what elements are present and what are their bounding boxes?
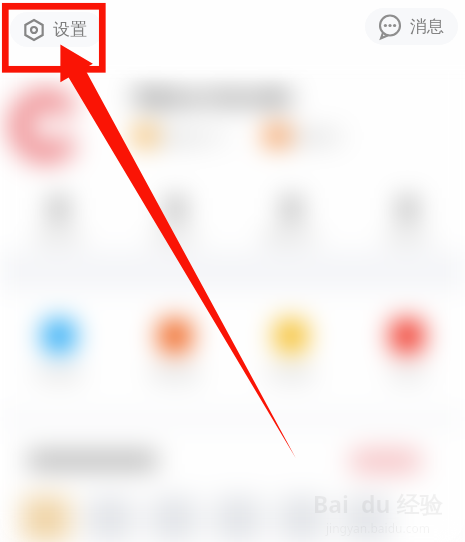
button[interactable] (214, 496, 278, 542)
button[interactable]: 每日福利 (0, 320, 117, 381)
other: Highlight (0, 0, 465, 542)
button[interactable] (150, 496, 214, 542)
button[interactable]: 消息 (365, 8, 458, 45)
staticText: 等级 LV3 (160, 131, 207, 146)
button[interactable]: 排行榜 (349, 320, 465, 381)
button[interactable] (342, 496, 406, 542)
button[interactable] (86, 496, 150, 542)
staticText: 消息 (410, 16, 444, 37)
staticText: 已购作品 (379, 229, 435, 244)
button[interactable]: 设置 (10, 12, 103, 47)
staticText: 限时免费 (147, 366, 203, 381)
button[interactable]: 新书推荐 (233, 320, 349, 381)
staticText: 书友5m1IVEv9BS (131, 84, 293, 111)
button[interactable] (22, 496, 86, 542)
button[interactable]: 阅读记录 (117, 197, 233, 244)
staticText: 会员中心 (293, 131, 337, 145)
staticText: 我的书架 (31, 229, 87, 244)
staticText: 设置 (53, 19, 87, 40)
button[interactable]: 我的书架 (0, 197, 117, 244)
button[interactable]: 限时免费 (117, 320, 233, 381)
button[interactable]: 已购作品 (349, 197, 465, 244)
staticText: 我的福利卡 (258, 229, 325, 244)
staticText: jingyan.baidu.com (326, 520, 430, 536)
staticText: 每日福利 (31, 366, 87, 381)
staticText: Bai du 经验 (313, 488, 443, 519)
button[interactable] (278, 496, 342, 542)
staticText: 新书推荐 (263, 366, 319, 381)
staticText: 排行榜 (385, 366, 430, 381)
button[interactable]: 我的福利卡 (233, 197, 349, 244)
staticText: 阅读记录 (147, 229, 203, 244)
